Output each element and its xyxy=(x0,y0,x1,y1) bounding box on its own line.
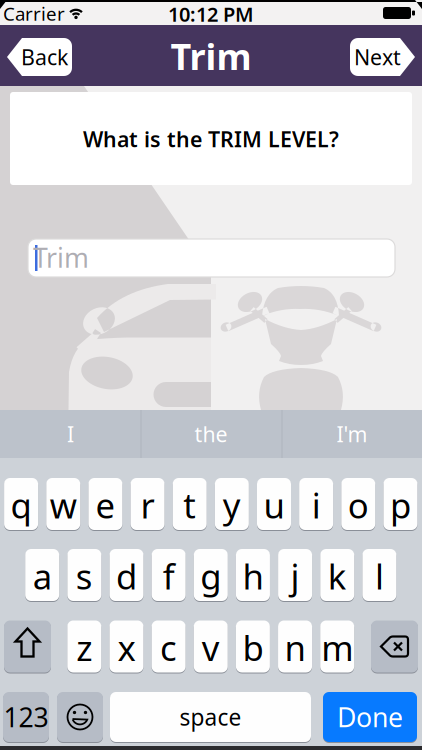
staticText: u xyxy=(263,482,284,528)
button[interactable]: Emoji xyxy=(57,691,103,743)
staticText: Back xyxy=(21,43,68,71)
staticText: x xyxy=(117,624,135,670)
staticText: c xyxy=(160,624,177,670)
staticText: 123 xyxy=(3,699,48,735)
button[interactable]: Shift xyxy=(4,619,51,673)
button[interactable]: p xyxy=(383,477,417,531)
button[interactable]: o xyxy=(341,477,375,531)
button[interactable]: u xyxy=(257,477,291,531)
button[interactable]: b xyxy=(236,619,270,673)
staticText: j xyxy=(291,553,300,599)
button[interactable]: i xyxy=(299,477,333,531)
button[interactable]: c xyxy=(152,619,186,673)
button[interactable]: d xyxy=(109,548,143,602)
button[interactable]: Numbers xyxy=(3,691,49,743)
staticText: n xyxy=(285,624,306,670)
button[interactable]: k xyxy=(320,548,354,602)
staticText: i xyxy=(312,482,321,528)
staticText: o xyxy=(348,482,369,528)
button[interactable]: g xyxy=(194,548,228,602)
staticText: Trim xyxy=(170,32,251,80)
button[interactable]: h xyxy=(236,548,270,602)
staticText: the xyxy=(194,420,227,448)
button[interactable]: I'm xyxy=(283,410,421,458)
button[interactable]: l xyxy=(362,548,396,602)
button[interactable]: Next xyxy=(350,38,415,76)
button[interactable]: Done xyxy=(323,691,417,743)
staticText: Carrier xyxy=(3,1,65,26)
button[interactable]: Trim xyxy=(28,239,395,277)
button[interactable]: v xyxy=(194,619,228,673)
staticText: v xyxy=(202,624,220,670)
button[interactable]: w xyxy=(46,477,80,531)
button[interactable]: n xyxy=(278,619,312,673)
staticText: 10:12 PM xyxy=(168,1,254,27)
staticText: Trim xyxy=(33,240,89,275)
staticText: y xyxy=(223,482,241,528)
staticText: What is the TRIM LEVEL? xyxy=(83,125,339,153)
staticText: g xyxy=(200,553,221,599)
button[interactable]: z xyxy=(67,619,101,673)
button[interactable]: q xyxy=(4,477,38,531)
button[interactable]: t xyxy=(173,477,207,531)
button[interactable]: s xyxy=(67,548,101,602)
staticText: e xyxy=(95,482,115,528)
button[interactable]: the xyxy=(142,410,280,458)
staticText: m xyxy=(321,624,353,670)
button[interactable]: x xyxy=(109,619,143,673)
staticText: d xyxy=(116,553,137,599)
button[interactable]: Delete xyxy=(371,619,418,673)
button[interactable]: f xyxy=(152,548,186,602)
staticText: I xyxy=(67,420,74,448)
button[interactable]: r xyxy=(130,477,164,531)
staticText: p xyxy=(390,482,411,528)
staticText: s xyxy=(76,553,93,599)
button[interactable]: e xyxy=(88,477,122,531)
staticText: t xyxy=(183,482,196,528)
staticText: k xyxy=(328,553,347,599)
button[interactable]: m xyxy=(320,619,354,673)
button[interactable]: I xyxy=(1,410,139,458)
staticText: space xyxy=(179,702,241,732)
staticText: l xyxy=(375,553,384,599)
staticText: r xyxy=(140,482,154,528)
staticText: I'm xyxy=(336,420,367,448)
staticText: q xyxy=(11,482,32,528)
button[interactable]: a xyxy=(25,548,59,602)
button[interactable]: y xyxy=(215,477,249,531)
staticText: Done xyxy=(337,699,403,735)
staticText: z xyxy=(76,624,92,670)
staticText: b xyxy=(242,624,263,670)
staticText: f xyxy=(163,553,175,599)
button[interactable]: Back xyxy=(7,38,72,76)
button[interactable]: j xyxy=(278,548,312,602)
staticText: h xyxy=(242,553,263,599)
staticText: a xyxy=(33,553,52,599)
button[interactable]: space xyxy=(110,691,311,743)
staticText: Next xyxy=(354,43,401,71)
staticText: w xyxy=(50,482,77,528)
